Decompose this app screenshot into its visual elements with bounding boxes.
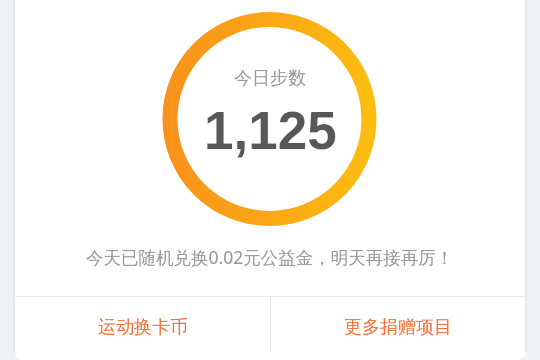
staticText: 今日步数 — [234, 67, 306, 90]
staticText: 1,125 — [204, 101, 337, 160]
staticText: 更多捐赠项目 — [344, 316, 452, 339]
staticText: 今天已随机兑换0.02元公益金，明天再接再厉！ — [86, 245, 454, 269]
staticText: 运动换卡币 — [98, 316, 188, 339]
button[interactable]: 运动换卡币 — [15, 297, 270, 352]
button[interactable]: 更多捐赠项目 — [271, 297, 525, 352]
